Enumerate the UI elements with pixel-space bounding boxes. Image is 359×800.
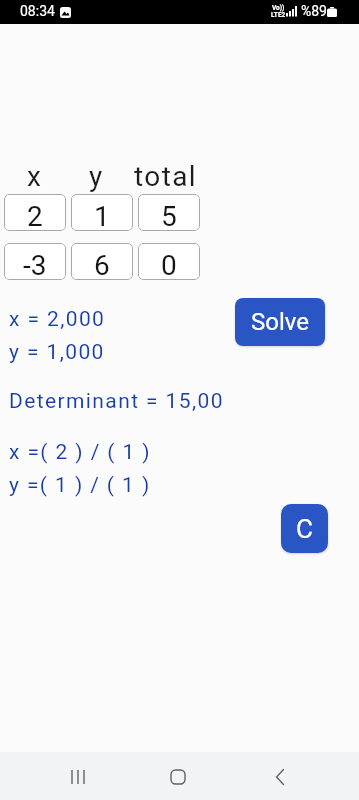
button[interactable]: 2	[4, 194, 66, 231]
staticText: 5	[161, 200, 177, 231]
staticText: Solve	[251, 308, 309, 336]
staticText: C	[296, 514, 313, 544]
button[interactable]: C	[281, 504, 328, 553]
button[interactable]: 6	[71, 243, 133, 280]
button[interactable]	[158, 759, 198, 795]
button[interactable]: Solve	[235, 298, 325, 346]
staticText: Determinant = 15,00	[9, 389, 224, 414]
button[interactable]: 1	[71, 194, 133, 231]
button[interactable]	[58, 759, 98, 795]
staticText: %89	[301, 3, 327, 19]
staticText: y =( 1 ) / ( 1 )	[9, 473, 151, 498]
staticText: LTE2	[271, 11, 286, 19]
staticText: Vo))	[272, 4, 285, 12]
button[interactable]: -3	[4, 243, 66, 280]
staticText: 0	[161, 249, 177, 280]
staticText: y = 1,000	[9, 340, 105, 365]
staticText: 6	[94, 249, 110, 280]
staticText: x = 2,000	[9, 307, 106, 332]
button[interactable]: 5	[138, 194, 200, 231]
staticText: y	[89, 160, 104, 193]
staticText: 08:34	[20, 3, 55, 19]
staticText: x	[27, 160, 43, 193]
staticText: 2	[27, 200, 43, 231]
staticText: -3	[23, 249, 47, 280]
button[interactable]	[260, 759, 300, 795]
staticText: total	[134, 160, 198, 193]
staticText: 1	[94, 200, 110, 231]
staticText: x =( 2 ) / ( 1 )	[9, 440, 152, 465]
button[interactable]: 0	[138, 243, 200, 280]
